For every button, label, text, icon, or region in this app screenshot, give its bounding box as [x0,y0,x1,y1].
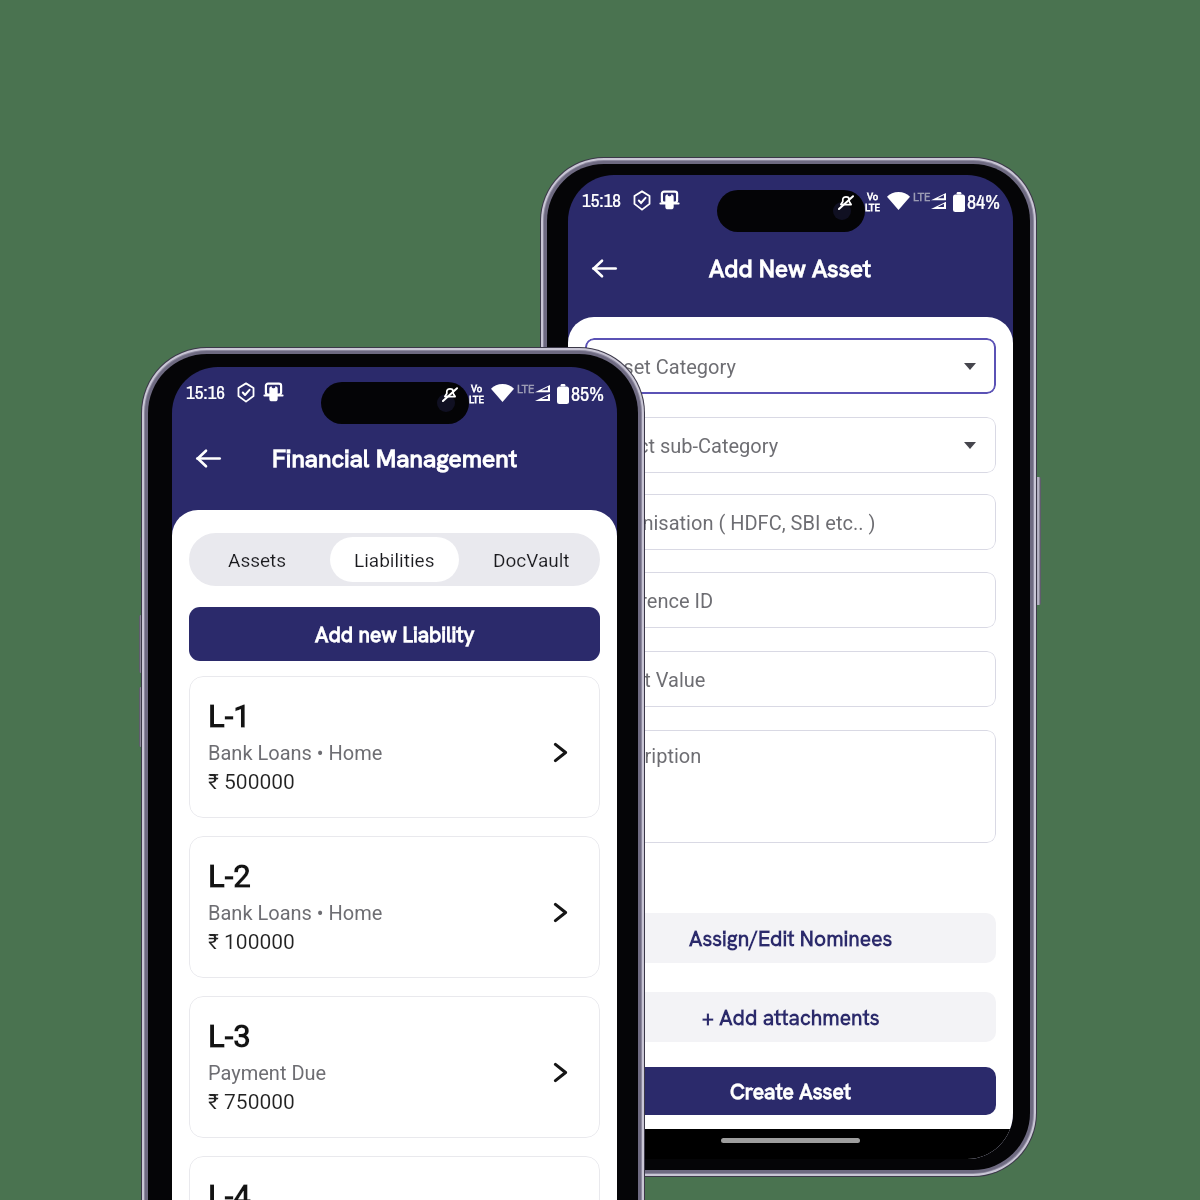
button[interactable]: Assets [193,537,322,582]
staticText: LTE [913,191,931,204]
staticText: 84% [967,188,1000,215]
staticText: Vo [471,383,483,394]
button[interactable]: DocVault [467,537,596,582]
staticText: Add New Asset [709,253,872,284]
staticText: Asset Category [600,355,736,378]
button[interactable]: + Add attachments [585,992,996,1042]
staticText: Create Asset [730,1078,851,1105]
staticText: Vo [867,191,879,202]
button[interactable]: Back [184,434,232,482]
staticText: Payment Due [208,1061,327,1084]
staticText: Bank Loans • Home [208,901,383,924]
staticText: + Add attachments [702,1004,880,1031]
staticText: L-3 [208,1018,251,1054]
staticText: Bank Loans • Home [208,741,383,764]
staticText: 15:18 [582,187,621,213]
button[interactable]: Asset Category [585,338,996,394]
staticText: Add new Liability [315,621,475,648]
staticText: L-2 [208,858,251,894]
staticText: LTE [469,394,484,405]
button[interactable]: Add new Liability [189,607,600,661]
button[interactable]: Create Asset [585,1067,996,1115]
staticText: Select sub-Category [600,434,779,457]
button[interactable]: Description [585,730,996,843]
staticText: Organisation ( HDFC, SBI etc.. ) [600,511,876,534]
staticText: L-1 [208,698,251,734]
staticText: Financial Management [272,442,518,474]
staticText: Asset Value [600,668,706,691]
button[interactable]: L-3 [189,996,600,1138]
staticText: L-4 [208,1178,251,1200]
staticText: ₹ 500000 [208,770,295,795]
staticText: LTE [865,202,880,213]
button[interactable]: Assign/Edit Nominees [585,913,996,963]
button[interactable]: Reference ID [585,572,996,628]
button[interactable]: L-2 [189,836,600,978]
staticText: LTE [517,383,535,396]
staticText: Liabilities [354,549,435,571]
button[interactable]: Asset Value [585,651,996,707]
staticText: Assign/Edit Nominees [689,925,893,952]
staticText: ₹ 100000 [208,930,295,955]
staticText: ₹ 750000 [208,1090,295,1115]
staticText: 15:16 [186,379,225,405]
button[interactable]: L-1 [189,676,600,818]
button[interactable]: L-4 [189,1156,600,1200]
button[interactable]: Liabilities [330,537,459,582]
button[interactable]: Select sub-Category [585,417,996,473]
staticText: DocVault [493,549,570,571]
button[interactable]: Organisation ( HDFC, SBI etc.. ) [585,494,996,550]
button[interactable]: Back [580,244,628,292]
staticText: 85% [571,380,604,407]
staticText: Reference ID [600,589,714,612]
staticText: Assets [228,549,287,571]
staticText: Description [600,744,702,767]
